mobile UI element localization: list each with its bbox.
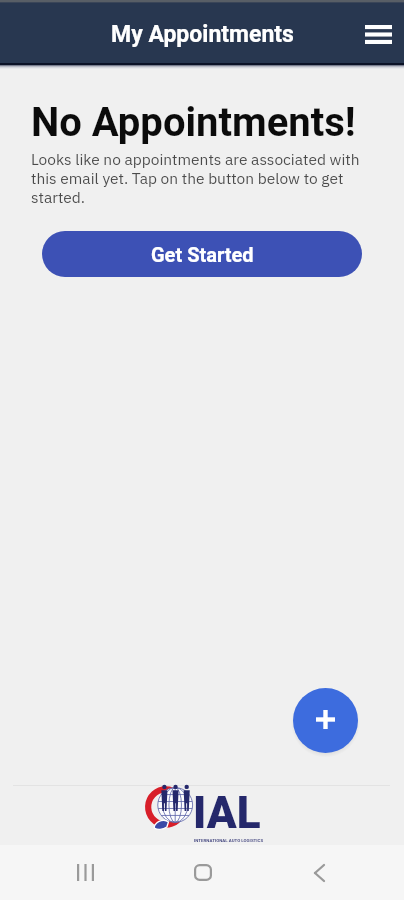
button[interactable]: Add appointment <box>293 688 358 753</box>
staticText: INTERNATIONAL AUTO LOGISTICS <box>194 838 264 843</box>
button[interactable]: Back <box>261 845 378 900</box>
button[interactable]: Get Started <box>42 231 362 277</box>
button[interactable]: Home <box>144 845 261 900</box>
button[interactable]: Recent apps <box>26 845 144 900</box>
staticText: Looks like no appointments are associate… <box>31 149 378 207</box>
staticText: IAL <box>193 787 261 839</box>
button[interactable]: Open navigation menu <box>354 10 402 58</box>
staticText: Get Started <box>151 243 254 266</box>
staticText: No Appointments! <box>31 99 356 146</box>
staticText: My Appointments <box>111 21 294 48</box>
